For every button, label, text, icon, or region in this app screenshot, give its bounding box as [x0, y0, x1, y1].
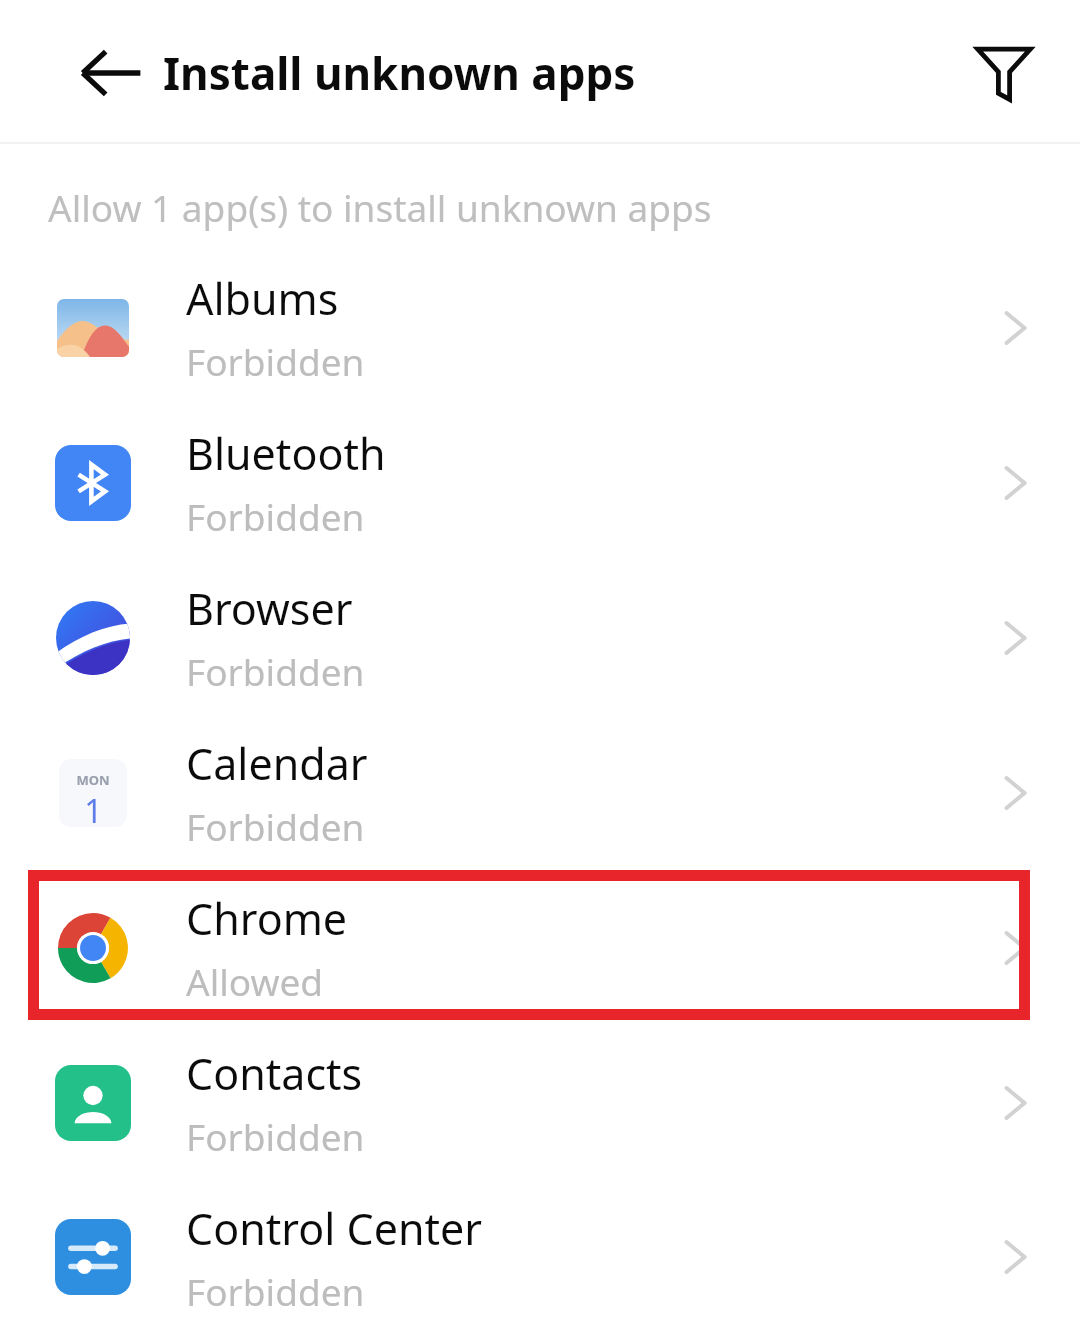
- staticText: Contacts: [186, 1044, 363, 1103]
- staticText: Forbidden: [186, 646, 365, 696]
- button[interactable]: Filter: [956, 24, 1052, 120]
- button[interactable]: Control Center: [0, 1180, 1080, 1334]
- button[interactable]: Back: [62, 25, 158, 121]
- staticText: Albums: [186, 269, 339, 328]
- staticText: MON: [76, 771, 110, 789]
- staticText: Forbidden: [186, 491, 365, 541]
- staticText: Control Center: [186, 1199, 483, 1258]
- button[interactable]: Bluetooth: [0, 405, 1080, 560]
- staticText: Forbidden: [186, 1111, 365, 1161]
- staticText: Forbidden: [186, 801, 365, 851]
- button[interactable]: Albums: [0, 250, 1080, 405]
- staticText: Bluetooth: [186, 424, 386, 483]
- staticText: Allow 1 app(s) to install unknown apps: [48, 182, 712, 232]
- staticText: Chrome: [186, 889, 348, 948]
- staticText: Allowed: [186, 956, 324, 1006]
- staticText: 1: [84, 789, 103, 827]
- button[interactable]: Contacts: [0, 1025, 1080, 1180]
- staticText: Forbidden: [186, 1266, 365, 1316]
- button[interactable]: Chrome: [0, 870, 1080, 1025]
- staticText: Browser: [186, 579, 353, 638]
- button[interactable]: MON: [0, 715, 1080, 870]
- staticText: Install unknown apps: [163, 43, 636, 103]
- staticText: Forbidden: [186, 336, 365, 386]
- staticText: Calendar: [186, 734, 368, 793]
- button[interactable]: Browser: [0, 560, 1080, 715]
